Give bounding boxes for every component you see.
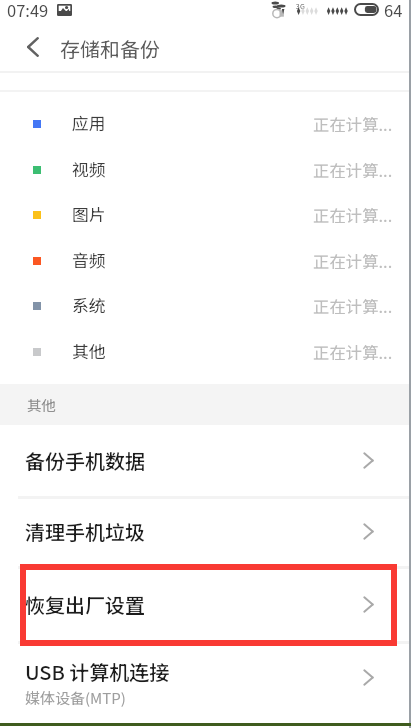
staticText: 媒体设备(MTP) — [25, 687, 126, 709]
button[interactable]: 其他 — [0, 329, 411, 375]
button[interactable]: 系统 — [0, 283, 411, 329]
staticText: 系统 — [72, 293, 106, 317]
button[interactable]: 图片 — [0, 192, 411, 238]
staticText: 07:49 — [7, 0, 49, 20]
button[interactable]: Back — [8, 23, 56, 71]
staticText: 正在计算... — [313, 158, 393, 182]
staticText: 64 — [384, 0, 403, 20]
staticText: 图片 — [72, 202, 106, 226]
button[interactable]: 清理手机垃圾 — [0, 497, 411, 566]
staticText: 视频 — [72, 157, 106, 181]
button[interactable]: 恢复出厂设置 — [0, 567, 411, 641]
button[interactable]: 应用 — [0, 101, 411, 147]
staticText: 正在计算... — [313, 294, 393, 318]
staticText: 3G — [296, 1, 305, 11]
staticText: 正在计算... — [313, 112, 393, 136]
staticText: 其他 — [72, 339, 106, 363]
staticText: 其他 — [27, 394, 56, 415]
button[interactable]: 音频 — [0, 238, 411, 284]
button[interactable]: USB 计算机连接 — [0, 642, 411, 722]
button[interactable]: 视频 — [0, 147, 411, 193]
staticText: 存储和备份 — [60, 34, 160, 63]
staticText: 正在计算... — [313, 340, 393, 364]
staticText: 音频 — [72, 248, 106, 272]
staticText: 恢复出厂设置 — [25, 590, 145, 619]
button[interactable]: 备份手机数据 — [0, 425, 411, 496]
staticText: 应用 — [72, 111, 106, 135]
staticText: 正在计算... — [313, 249, 393, 273]
staticText: USB 计算机连接 — [25, 657, 170, 686]
staticText: 正在计算... — [313, 203, 393, 227]
staticText: 清理手机垃圾 — [25, 517, 145, 546]
staticText: 备份手机数据 — [25, 446, 145, 475]
